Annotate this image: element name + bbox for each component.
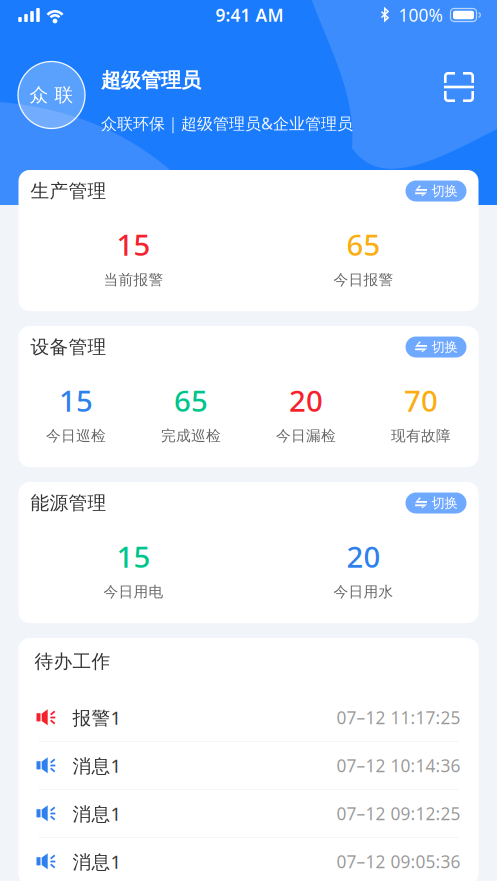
staticText: 15: [116, 225, 150, 264]
staticText: 众联环保｜超级管理员&企业管理员: [101, 113, 353, 134]
staticText: 完成巡检: [161, 427, 221, 445]
staticText: 众 联: [29, 83, 73, 106]
button[interactable]: 切换: [405, 336, 466, 357]
staticText: 报警1: [72, 705, 121, 730]
staticText: 07–12 10:14:36: [336, 754, 460, 777]
staticText: 今日用电: [103, 583, 163, 601]
button[interactable]: 消息1: [18, 838, 478, 883]
staticText: 生产管理: [30, 179, 106, 202]
staticText: 今日漏检: [276, 427, 336, 445]
button[interactable]: 切换: [405, 180, 466, 201]
staticText: 现有故障: [391, 427, 451, 445]
staticText: 能源管理: [30, 491, 106, 514]
staticText: 切换: [431, 495, 457, 511]
staticText: 消息1: [72, 753, 121, 778]
staticText: 15: [59, 381, 93, 420]
staticText: 超级管理员: [101, 68, 201, 93]
staticText: 07–12 09:05:36: [336, 850, 460, 873]
button[interactable]: 报警1: [18, 694, 478, 742]
staticText: 07–12 09:12:25: [336, 802, 460, 825]
staticText: 消息1: [72, 801, 121, 826]
staticText: 07–12 11:17:25: [336, 706, 460, 729]
button[interactable]: 切换: [405, 492, 466, 513]
button[interactable]: 消息1: [18, 790, 478, 838]
staticText: 今日用水: [333, 583, 393, 601]
button[interactable]: 消息1: [18, 742, 478, 790]
staticText: 设备管理: [30, 335, 106, 358]
staticText: 100%: [398, 3, 442, 26]
staticText: 待办工作: [34, 650, 110, 673]
button[interactable]: Scan: [439, 67, 479, 107]
staticText: 当前报警: [103, 271, 163, 289]
staticText: 65: [174, 381, 208, 420]
staticText: 消息1: [72, 849, 121, 874]
staticText: 9:41 AM: [215, 3, 283, 26]
staticText: 切换: [431, 183, 457, 199]
staticText: 20: [346, 537, 380, 576]
staticText: 15: [116, 537, 150, 576]
staticText: 65: [346, 225, 380, 264]
staticText: 20: [289, 381, 323, 420]
staticText: 切换: [431, 339, 457, 355]
staticText: 今日报警: [333, 271, 393, 289]
staticText: 今日巡检: [46, 427, 106, 445]
staticText: 70: [404, 381, 438, 420]
